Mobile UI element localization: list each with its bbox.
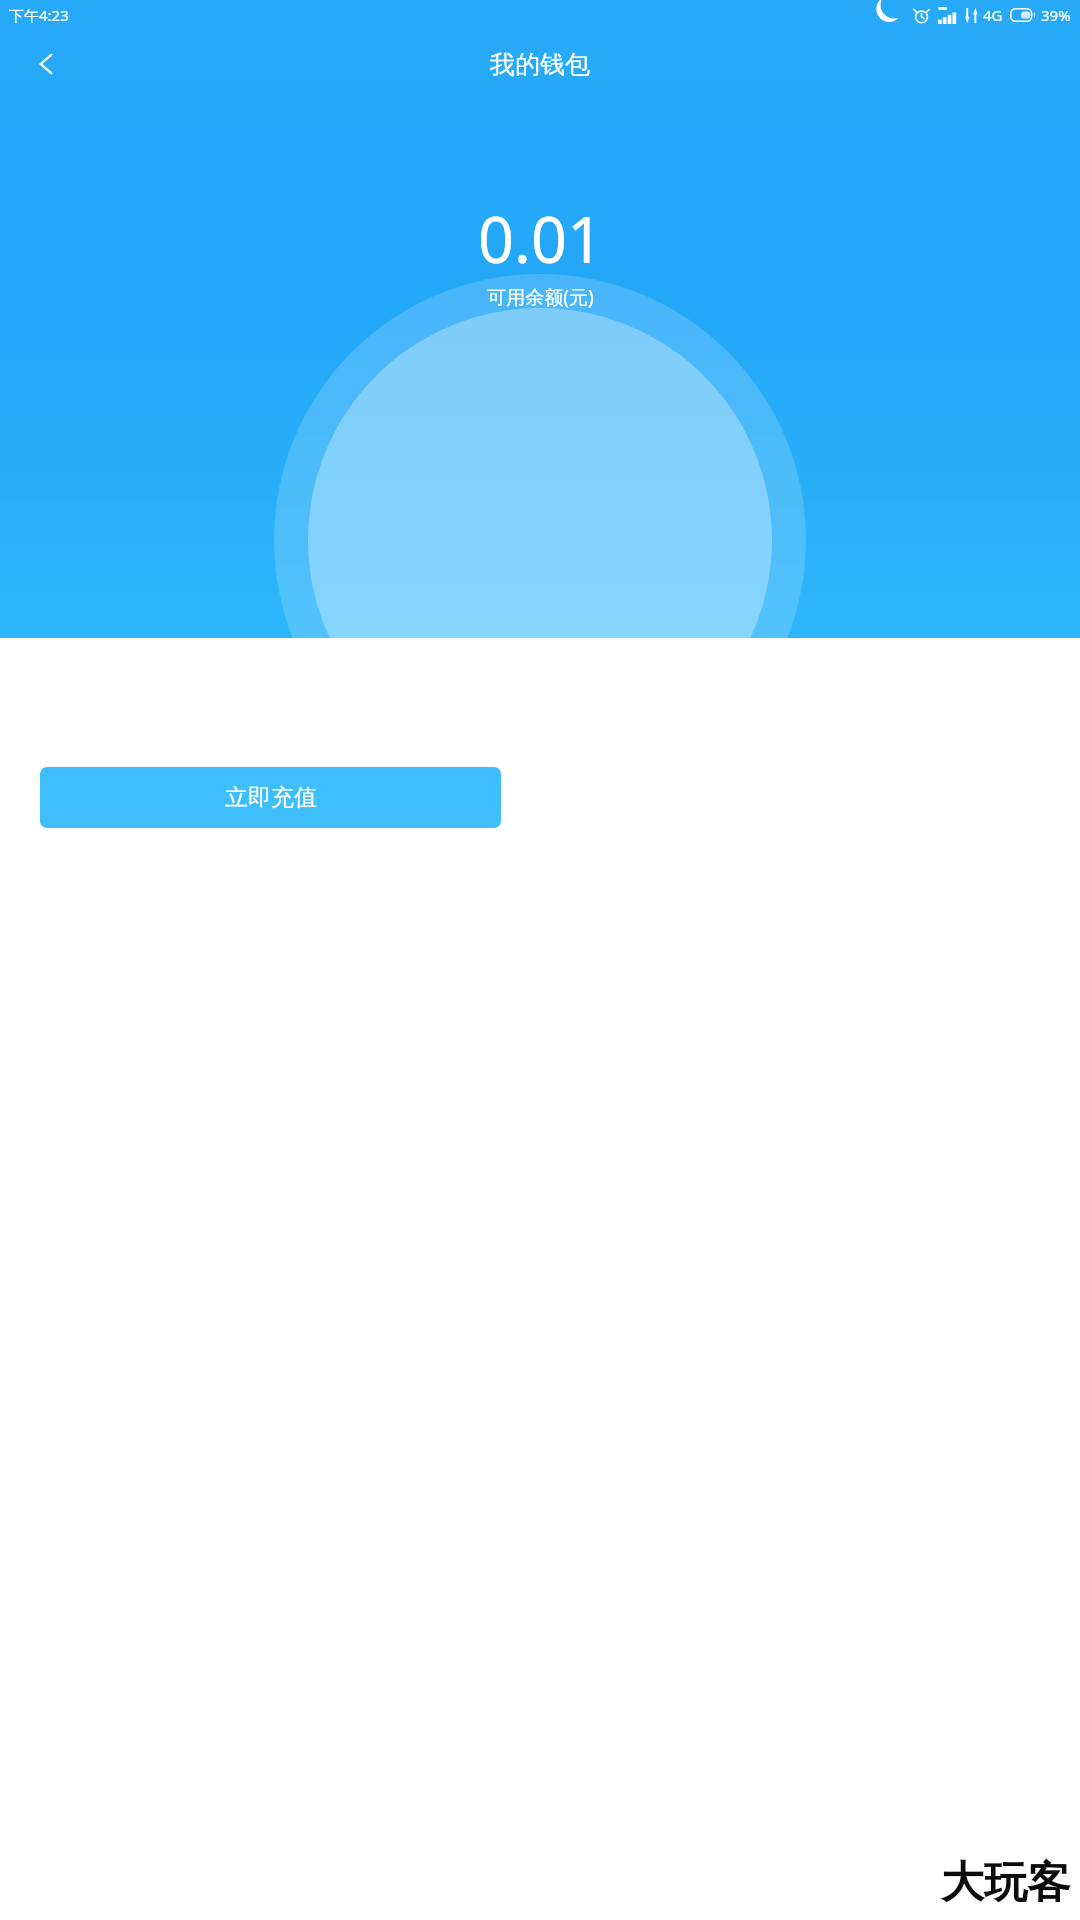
staticText: 可用余额(元) xyxy=(487,284,594,310)
staticText: 我的钱包 xyxy=(490,49,590,80)
staticText: 大玩客 xyxy=(941,1856,1070,1910)
staticText: 4G xyxy=(983,5,1003,25)
staticText: 立即充值 xyxy=(225,783,317,812)
staticText: 39% xyxy=(1041,5,1071,25)
button[interactable]: Back xyxy=(18,36,74,92)
button[interactable]: 立即充值 xyxy=(40,767,501,828)
staticText: 下午4:23 xyxy=(9,5,69,25)
staticText: 0.01 xyxy=(478,196,603,282)
